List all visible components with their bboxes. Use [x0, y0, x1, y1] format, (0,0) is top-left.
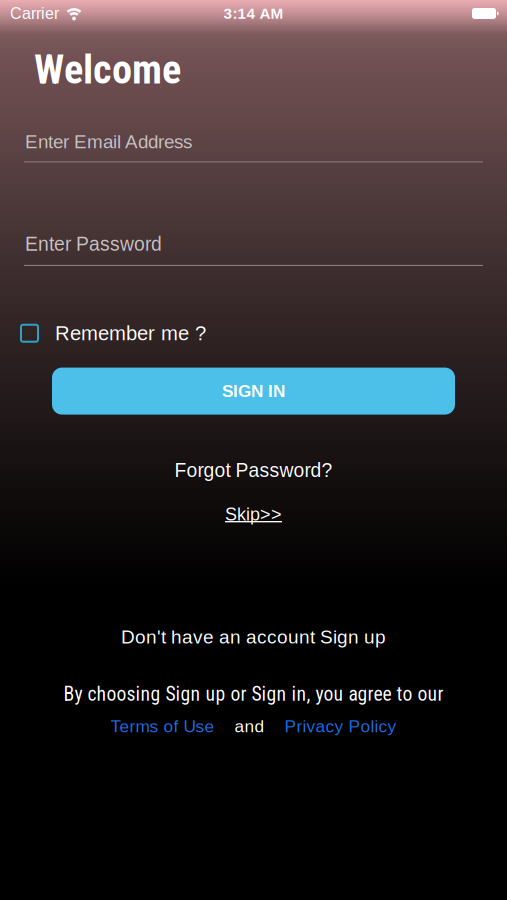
- button[interactable]: Forgot Password?: [174, 460, 332, 481]
- staticText: Carrier: [10, 5, 59, 22]
- staticText: Don't have an account: [121, 626, 315, 647]
- button[interactable]: Privacy Policy: [284, 717, 396, 736]
- button[interactable]: Terms of Use: [110, 717, 214, 736]
- staticText: Privacy Policy: [284, 717, 396, 736]
- staticText: Terms of Use: [110, 717, 214, 736]
- staticText: SIGN IN: [222, 381, 285, 401]
- button[interactable]: Remember me ?: [0, 322, 206, 345]
- staticText: and: [234, 717, 264, 736]
- staticText: Skip>>: [225, 504, 282, 524]
- staticText: Remember me ?: [55, 322, 206, 345]
- staticText: By choosing Sign up or Sign in, you agre…: [63, 682, 443, 706]
- button[interactable]: SIGN IN: [52, 368, 455, 415]
- staticText: Enter Password: [25, 233, 162, 255]
- button[interactable]: Skip>>: [225, 504, 282, 524]
- staticText: Enter Email Address: [25, 131, 192, 152]
- staticText: Welcome: [34, 46, 181, 93]
- staticText: Forgot Password?: [174, 460, 332, 481]
- button[interactable]: Sign up: [320, 626, 386, 647]
- staticText: 3:14 AM: [223, 5, 283, 22]
- staticText: Sign up: [320, 626, 386, 647]
